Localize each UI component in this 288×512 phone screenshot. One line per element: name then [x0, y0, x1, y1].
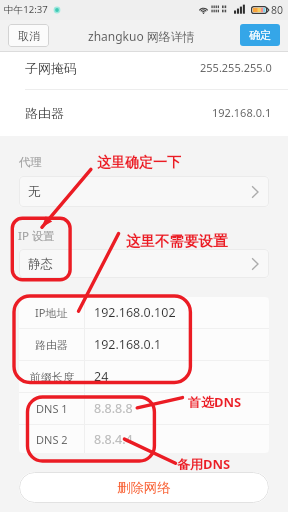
button[interactable]: DNS 1: [19, 393, 269, 424]
staticText: 子网掩码: [25, 60, 77, 76]
button[interactable]: 确定: [240, 24, 280, 46]
button[interactable]: 静态: [19, 249, 269, 278]
staticText: 静态: [28, 256, 53, 272]
button[interactable]: 无: [19, 176, 269, 207]
staticText: 192.168.0.1: [212, 105, 272, 120]
staticText: 8.8.8.8: [94, 400, 133, 417]
button[interactable]: 子网掩码: [0, 52, 288, 83]
staticText: zhangkuo 网络详情: [88, 28, 195, 44]
staticText: 路由器: [35, 338, 68, 352]
staticText: 备用DNS: [177, 455, 231, 473]
button[interactable]: IP地址: [19, 297, 269, 328]
staticText: IP 设置: [18, 228, 55, 244]
button[interactable]: 路由器: [0, 90, 288, 135]
staticText: 这里不需要设置: [126, 232, 228, 250]
button[interactable]: 路由器: [19, 329, 269, 360]
staticText: IP地址: [35, 305, 68, 320]
staticText: 前缀长度: [30, 370, 74, 384]
button[interactable]: 前缀长度: [19, 361, 269, 392]
staticText: 这里确定一下: [97, 154, 181, 172]
staticText: 255.255.255.0: [200, 60, 272, 75]
staticText: 首选DNS: [188, 393, 242, 411]
staticText: 24: [94, 368, 109, 385]
button[interactable]: DNS 2: [19, 425, 269, 453]
staticText: 192.168.0.1: [94, 336, 162, 353]
staticText: 代理: [19, 155, 42, 169]
staticText: 8.8.4.4: [94, 431, 133, 448]
staticText: 取消: [18, 29, 40, 43]
staticText: 无: [28, 184, 41, 200]
staticText: 删除网络: [117, 479, 171, 496]
staticText: 确定: [249, 28, 271, 42]
staticText: 192.168.0.102: [94, 304, 176, 321]
staticText: 80: [271, 3, 284, 17]
staticText: 中午12:37: [4, 3, 48, 16]
staticText: DNS 1: [36, 401, 68, 416]
button[interactable]: 删除网络: [19, 472, 269, 503]
staticText: 路由器: [25, 105, 64, 121]
button[interactable]: 取消: [8, 24, 49, 47]
staticText: DNS 2: [36, 432, 68, 447]
